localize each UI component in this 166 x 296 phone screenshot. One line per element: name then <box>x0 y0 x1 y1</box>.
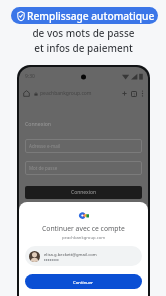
button[interactable]: Connexion <box>25 186 142 199</box>
button[interactable]: elisa.g.beckett@gmail.com <box>25 246 142 266</box>
staticText: peachbankgroup.com <box>62 235 106 241</box>
button[interactable]: Continuer <box>25 274 142 289</box>
staticText: Connexion <box>25 120 52 127</box>
staticText: et infos de paiement <box>34 41 133 55</box>
staticText: Continuer <box>73 279 94 285</box>
button[interactable]: Remplissage automatique <box>11 7 158 24</box>
staticText: 1 <box>133 92 136 97</box>
staticText: Connexion <box>71 189 97 196</box>
staticText: de vos mots de passe <box>32 26 135 40</box>
staticText: Remplissage automatique <box>27 9 155 23</box>
staticText: Mot de passe <box>29 165 58 171</box>
staticText: Adresse e-mail <box>29 143 61 149</box>
staticText: Continuer avec ce compte <box>42 224 125 233</box>
staticText: 9:30 <box>25 73 35 80</box>
staticText: elisa.g.beckett@gmail.com <box>44 252 97 258</box>
staticText: peachbankgroup.com <box>40 90 92 97</box>
